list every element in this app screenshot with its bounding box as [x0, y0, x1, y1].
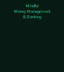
staticText: Mindful: [25, 3, 38, 8]
staticText: & Banking: [23, 14, 41, 19]
staticText: Money Management: [14, 8, 50, 14]
